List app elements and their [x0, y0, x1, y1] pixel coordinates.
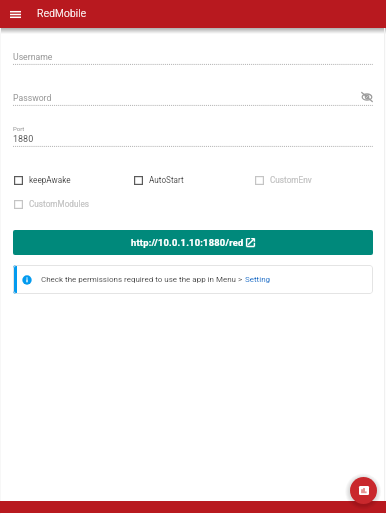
button[interactable]: http://10.0.1.10:1880/red: [13, 230, 373, 255]
button[interactable]: CustomModules: [14, 199, 90, 209]
staticText: http://10.0.1.10:1880/red: [131, 237, 244, 248]
staticText: Username: [13, 52, 53, 62]
button[interactable]: Gallery: [350, 477, 377, 504]
button[interactable]: Menu: [0, 0, 30, 28]
button[interactable]: CustomEnv: [255, 175, 312, 185]
staticText: CustomModules: [29, 199, 90, 209]
staticText: Setting: [245, 275, 271, 284]
staticText: AutoStart: [149, 175, 184, 185]
staticText: Password: [13, 93, 52, 103]
staticText: 1880: [13, 134, 34, 145]
button[interactable]: keepAwake: [14, 175, 71, 185]
button[interactable]: AutoStart: [134, 175, 184, 185]
staticText: Port: [13, 125, 25, 132]
staticText: Check the permissions required to use th…: [41, 275, 245, 284]
staticText: CustomEnv: [270, 175, 312, 185]
staticText: RedMobile: [37, 8, 87, 20]
button[interactable]: Show password: [359, 89, 375, 105]
staticText: keepAwake: [29, 175, 71, 185]
button[interactable]: Check the permissions required to use th…: [13, 265, 373, 294]
